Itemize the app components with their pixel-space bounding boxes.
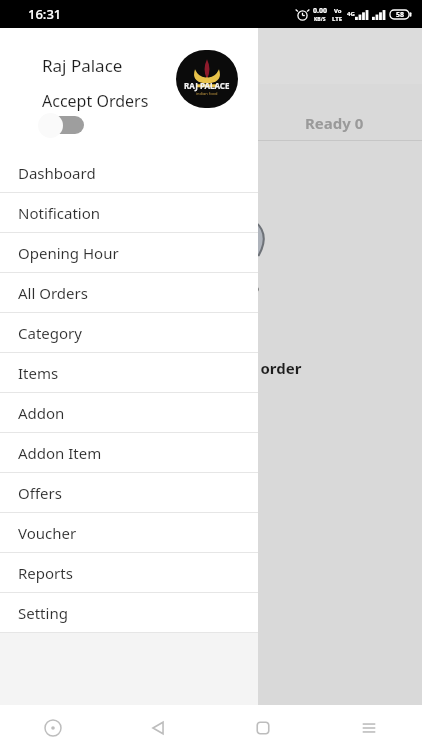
staticText: y order <box>248 358 302 378</box>
staticText: Ready 0 <box>305 113 364 133</box>
staticText: RAJ PALACE <box>184 80 230 91</box>
staticText: Reports <box>18 563 73 583</box>
button[interactable]: Offers <box>0 473 258 513</box>
staticText: 16:31 <box>28 5 62 23</box>
button[interactable] <box>38 112 86 138</box>
staticText: Notification <box>18 203 101 223</box>
button[interactable]: All Orders <box>0 273 258 313</box>
button[interactable]: Dashboard <box>0 153 258 193</box>
staticText: Category <box>18 323 82 343</box>
staticText: indian food <box>196 91 218 96</box>
button[interactable]: Notification <box>0 193 258 233</box>
button[interactable]: Setting <box>0 593 258 633</box>
staticText: KB/S <box>314 16 326 23</box>
staticText: Opening Hour <box>18 243 119 263</box>
staticText: Voucher <box>18 523 77 543</box>
button[interactable]: Assistant <box>0 705 105 750</box>
button[interactable]: Opening Hour <box>0 233 258 273</box>
staticText: Items <box>18 363 59 383</box>
staticText: Dashboard <box>18 163 96 183</box>
button[interactable]: Voucher <box>0 513 258 553</box>
button[interactable]: Home <box>210 705 316 750</box>
staticText: Setting <box>18 603 68 623</box>
staticText: Accept Orders <box>42 90 149 112</box>
button[interactable]: Recents <box>316 705 422 750</box>
staticText: Addon Item <box>18 443 102 463</box>
staticText: Offers <box>18 483 62 503</box>
staticText: 0.00 <box>313 6 327 16</box>
button[interactable]: Back <box>105 705 210 750</box>
staticText: ? <box>250 280 260 306</box>
button[interactable]: Category <box>0 313 258 353</box>
staticText: All Orders <box>18 283 88 303</box>
staticText: Addon <box>18 403 65 423</box>
button[interactable]: Addon <box>0 393 258 433</box>
button[interactable]: Addon Item <box>0 433 258 473</box>
staticText: 4G <box>347 10 355 18</box>
staticText: Raj Palace <box>42 54 123 77</box>
staticText: Vo <box>334 7 342 15</box>
button[interactable]: Items <box>0 353 258 393</box>
staticText: LTE <box>332 15 343 23</box>
button[interactable]: Reports <box>0 553 258 593</box>
staticText: 58 <box>396 10 405 20</box>
